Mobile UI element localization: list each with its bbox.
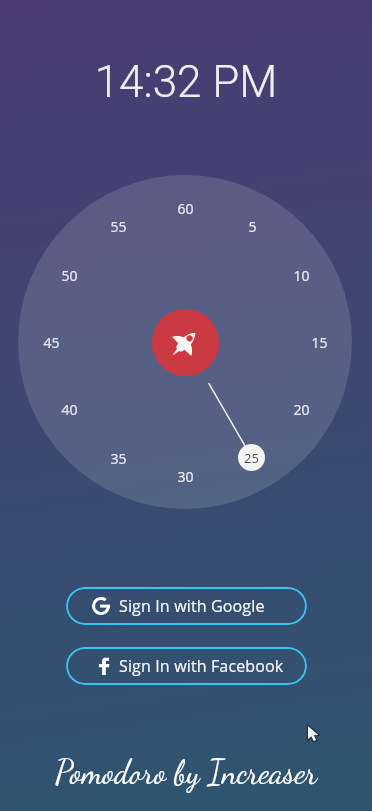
button[interactable]: 25 bbox=[238, 444, 265, 471]
staticText: 45 bbox=[43, 333, 60, 352]
staticText: 14:32 PM bbox=[0, 56, 372, 108]
staticText: 10 bbox=[293, 266, 310, 285]
staticText: 20 bbox=[293, 400, 310, 419]
staticText: 15 bbox=[311, 333, 328, 352]
staticText: Pomodoro by Increaser bbox=[0, 753, 372, 792]
button[interactable]: Sign In with Facebook bbox=[66, 647, 307, 685]
staticText: 5 bbox=[248, 217, 257, 236]
button[interactable]: Start bbox=[152, 309, 219, 376]
staticText: 25 bbox=[244, 449, 259, 467]
staticText: 55 bbox=[110, 217, 127, 236]
button[interactable]: Sign In with Google bbox=[66, 587, 307, 625]
staticText: 50 bbox=[61, 266, 78, 285]
staticText: 60 bbox=[177, 199, 194, 218]
staticText: 35 bbox=[110, 449, 127, 468]
staticText: Sign In with Google bbox=[119, 595, 265, 617]
staticText: 25 bbox=[244, 449, 261, 468]
staticText: 40 bbox=[61, 400, 78, 419]
staticText: 30 bbox=[177, 467, 194, 486]
staticText: Sign In with Facebook bbox=[119, 655, 284, 677]
